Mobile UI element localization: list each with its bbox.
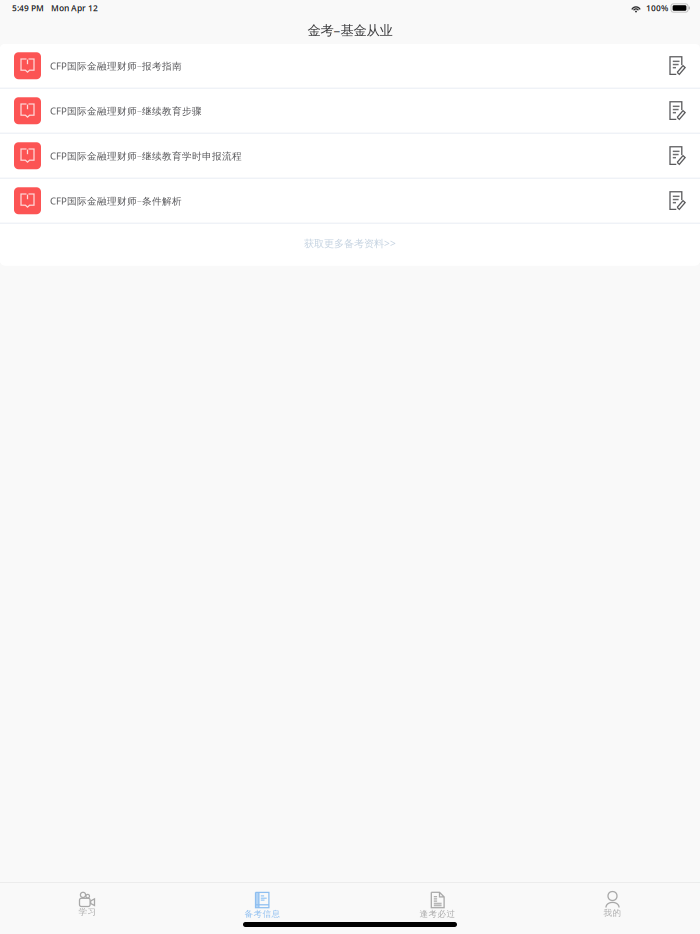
button[interactable]: 我的: [525, 883, 700, 918]
staticText: CFP国际金融理财师–报考指南: [50, 59, 182, 72]
button[interactable]: CFP国际金融理财师–报考指南: [0, 44, 700, 87]
staticText: 获取更多备考资料>>: [304, 236, 396, 250]
staticText: CFP国际金融理财师–继续教育学时申报流程: [50, 149, 242, 162]
button[interactable]: CFP国际金融理财师–继续教育步骤: [0, 89, 700, 132]
staticText: 备考信息: [244, 908, 280, 919]
staticText: 我的: [603, 907, 621, 918]
button[interactable]: 学习: [0, 883, 175, 918]
staticText: Mon Apr 12: [51, 2, 98, 14]
button[interactable]: 备考信息: [175, 883, 350, 918]
staticText: CFP国际金融理财师–继续教育步骤: [50, 104, 202, 117]
staticText: 学习: [78, 906, 96, 917]
staticText: 逢考必过: [419, 908, 455, 919]
staticText: 5:49 PM: [12, 2, 44, 14]
staticText: 金考–基金从业: [307, 21, 392, 39]
button[interactable]: 逢考必过: [350, 883, 525, 918]
staticText: 100%: [646, 2, 668, 14]
button[interactable]: CFP国际金融理财师–条件解析: [0, 179, 700, 222]
button[interactable]: 获取更多备考资料>>: [0, 224, 700, 265]
button[interactable]: CFP国际金融理财师–继续教育学时申报流程: [0, 134, 700, 177]
staticText: CFP国际金融理财师–条件解析: [50, 194, 182, 207]
